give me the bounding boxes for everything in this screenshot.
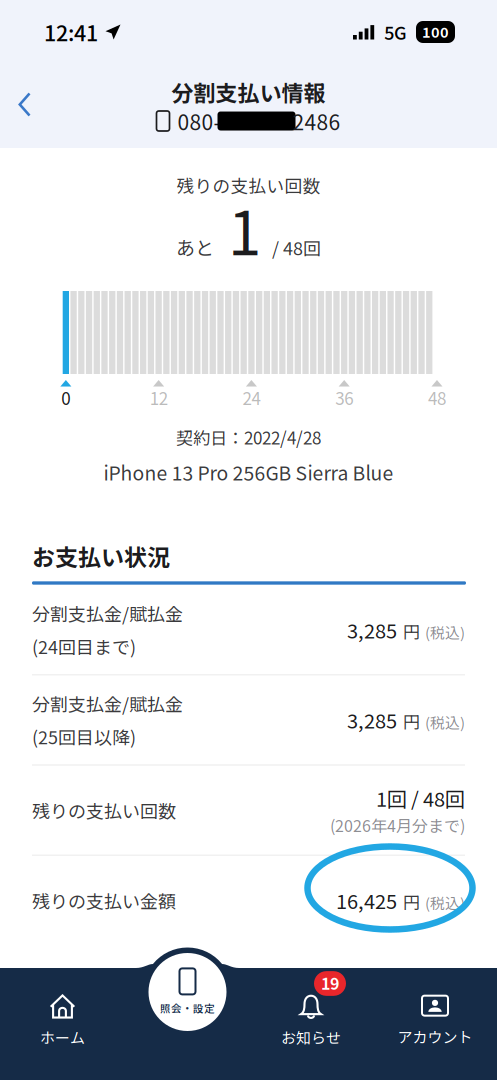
staticText: 残りの支払い回数: [32, 797, 176, 823]
staticText: 分割支払金/賦払金: [32, 690, 183, 716]
staticText: 1: [228, 186, 261, 272]
staticText: 12: [150, 385, 168, 410]
staticText: 円: [403, 889, 420, 914]
staticText: 分割支払金/賦払金: [32, 600, 183, 626]
staticText: 残りの支払い回数: [176, 172, 320, 198]
staticText: 24: [242, 385, 260, 410]
staticText: (25回目以降): [32, 723, 136, 749]
staticText: 3,285: [347, 705, 397, 734]
staticText: 契約日：2022/4/28: [176, 425, 321, 449]
button[interactable]: 残りの支払い回数: [0, 766, 497, 855]
staticText: 48: [428, 385, 446, 410]
button[interactable]: ホーム: [7, 990, 117, 1052]
staticText: お知らせ: [281, 1026, 341, 1048]
staticText: お支払い状況: [32, 539, 170, 573]
staticText: 36: [335, 385, 353, 410]
staticText: (税込): [425, 892, 465, 913]
staticText: 0: [61, 385, 70, 410]
staticText: (2026年4月分まで): [330, 813, 465, 837]
button[interactable]: 戻る: [2, 78, 48, 131]
staticText: 照会・設定: [160, 1000, 215, 1016]
staticText: 3,285: [347, 615, 397, 644]
button[interactable]: 分割支払金/賦払金: [0, 675, 497, 764]
staticText: あと: [176, 233, 214, 261]
staticText: iPhone 13 Pro 256GB Sierra Blue: [103, 458, 393, 486]
staticText: (税込): [425, 621, 465, 643]
button[interactable]: アカウント: [380, 990, 490, 1052]
staticText: 12:41: [44, 16, 98, 47]
button[interactable]: お知らせ: [256, 990, 366, 1052]
staticText: 19: [321, 971, 339, 994]
staticText: アカウント: [397, 1026, 472, 1047]
staticText: 2486: [292, 106, 340, 136]
staticText: / 48回: [272, 234, 321, 260]
staticText: 分割支払い情報: [171, 76, 325, 108]
staticText: (税込): [425, 711, 465, 733]
staticText: ホーム: [40, 1026, 85, 1048]
staticText: 残りの支払い金額: [32, 887, 176, 913]
staticText: 100: [422, 21, 449, 42]
staticText: 円: [403, 709, 420, 733]
staticText: 円: [403, 619, 420, 643]
staticText: 16,425: [336, 886, 397, 915]
staticText: 5G: [384, 19, 407, 45]
button[interactable]: 照会・設定: [148, 953, 226, 1031]
staticText: 1回 / 48回: [376, 783, 465, 812]
staticText: 080-: [177, 106, 220, 136]
button[interactable]: 分割支払金/賦払金: [0, 585, 497, 674]
button[interactable]: 残りの支払い金額: [0, 856, 497, 945]
staticText: (24回目まで): [32, 633, 136, 659]
